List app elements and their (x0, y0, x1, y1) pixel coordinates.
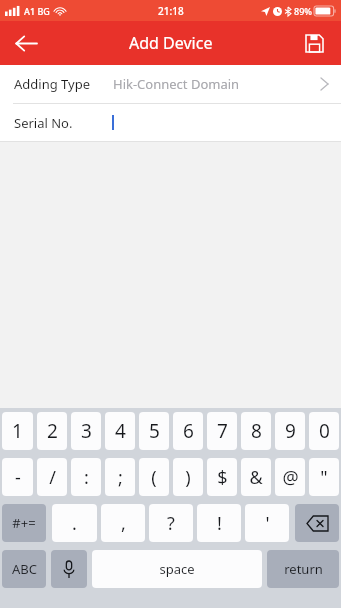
button[interactable]: 0 (309, 412, 339, 450)
staticText: : (84, 465, 89, 490)
staticText: Hik-Connect Domain (113, 75, 240, 93)
button[interactable]: Delete (295, 504, 339, 542)
staticText: 1 (12, 418, 23, 444)
staticText: . (72, 511, 77, 536)
button[interactable]: 5 (139, 412, 169, 450)
button[interactable]: Adding Type (0, 65, 341, 103)
staticText: 0 (319, 418, 330, 444)
button[interactable]: ( (139, 458, 169, 496)
button[interactable]: ? (149, 504, 193, 542)
button[interactable]: ABC (2, 550, 46, 588)
button[interactable]: ) (173, 458, 203, 496)
staticText: @ (282, 465, 299, 490)
button[interactable]: 4 (105, 412, 135, 450)
staticText: ! (217, 511, 222, 536)
staticText: 7 (217, 418, 228, 444)
button[interactable]: #+= (2, 504, 46, 542)
button[interactable]: 1 (2, 412, 33, 450)
staticText: 4 (115, 418, 126, 444)
staticText: ( (151, 465, 157, 490)
staticText: ; (118, 465, 123, 490)
staticText: 2 (47, 418, 58, 444)
staticText: " (320, 465, 328, 490)
staticText: / (49, 465, 56, 490)
button[interactable]: " (309, 458, 339, 496)
staticText: #+= (12, 514, 36, 532)
button[interactable]: Dictate (51, 550, 87, 588)
button[interactable]: 8 (241, 412, 271, 450)
staticText: $ (217, 465, 228, 490)
staticText: ) (185, 465, 191, 490)
button[interactable]: Save (295, 24, 333, 62)
button[interactable]: - (2, 458, 33, 496)
button[interactable]: 9 (275, 412, 305, 450)
button[interactable]: ; (105, 458, 135, 496)
staticText: 9 (285, 418, 296, 444)
staticText: 3 (81, 418, 92, 444)
staticText: ' (265, 511, 270, 536)
button[interactable]: Serial No. (0, 104, 341, 141)
staticText: Add Device (129, 32, 213, 54)
button[interactable]: 6 (173, 412, 203, 450)
staticText: A1 BG (24, 5, 50, 17)
staticText: - (15, 465, 21, 490)
staticText: space (159, 560, 195, 578)
button[interactable]: 3 (71, 412, 101, 450)
staticText: ? (167, 511, 175, 536)
button[interactable]: , (101, 504, 145, 542)
button[interactable]: . (52, 504, 97, 542)
staticText: 6 (183, 418, 194, 444)
staticText: return (284, 560, 323, 578)
button[interactable]: Back (6, 23, 46, 63)
button[interactable]: & (241, 458, 271, 496)
button[interactable]: 7 (207, 412, 237, 450)
button[interactable]: @ (275, 458, 305, 496)
button[interactable]: : (71, 458, 101, 496)
staticText: 5 (149, 418, 160, 444)
staticText: Adding Type (14, 75, 90, 93)
staticText: Serial No. (14, 114, 73, 132)
staticText: & (249, 465, 263, 490)
staticText: 8 (251, 418, 262, 444)
staticText: 89% (294, 5, 312, 17)
button[interactable]: space (92, 550, 262, 588)
button[interactable]: ! (197, 504, 241, 542)
button[interactable]: return (267, 550, 339, 588)
staticText: , (121, 511, 126, 536)
button[interactable]: 2 (37, 412, 67, 450)
button[interactable]: $ (207, 458, 237, 496)
staticText: ABC (12, 560, 37, 578)
button[interactable]: / (37, 458, 67, 496)
staticText: 21:18 (158, 4, 184, 18)
button[interactable]: ' (245, 504, 289, 542)
